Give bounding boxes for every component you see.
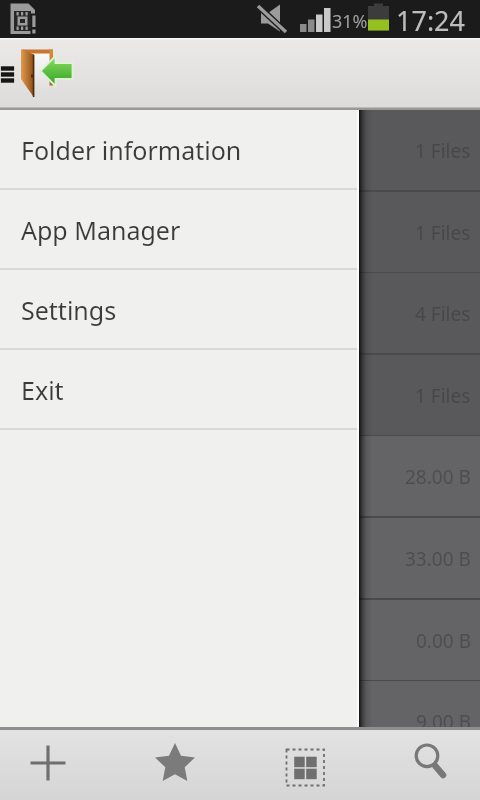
staticText: 1 Files [415,138,471,164]
staticText: 0.00 B [416,628,471,654]
staticText: App Manager [21,213,181,247]
button[interactable]: 1 Files [359,110,480,192]
button[interactable]: 1 Files [359,192,480,274]
button[interactable]: 9.00 B [359,681,480,727]
staticText: 31% [332,9,368,34]
button[interactable] [0,727,120,800]
button[interactable] [360,727,480,800]
staticText: Folder information [21,133,242,167]
button[interactable]: 28.00 B [359,436,480,518]
staticText: 33.00 B [405,546,471,572]
button[interactable]: Settings [0,270,359,350]
staticText: 4 Files [415,301,471,327]
button[interactable] [240,727,360,800]
button[interactable]: 4 Files [359,273,480,355]
button[interactable]: 1 Files [359,355,480,437]
button[interactable] [120,727,240,800]
staticText: 28.00 B [405,464,471,490]
staticText: Settings [21,293,117,327]
staticText: 9.00 B [416,709,471,727]
button[interactable]: Exit [0,350,359,430]
button[interactable]: 33.00 B [359,518,480,600]
staticText: 17:24 [396,2,466,39]
button[interactable]: 0.00 B [359,600,480,682]
staticText: Exit [21,373,64,407]
staticText: 1 Files [415,383,471,409]
staticText: 1 Files [415,220,471,246]
button[interactable]: Folder information [0,110,359,190]
button[interactable]: App Manager [0,190,359,270]
